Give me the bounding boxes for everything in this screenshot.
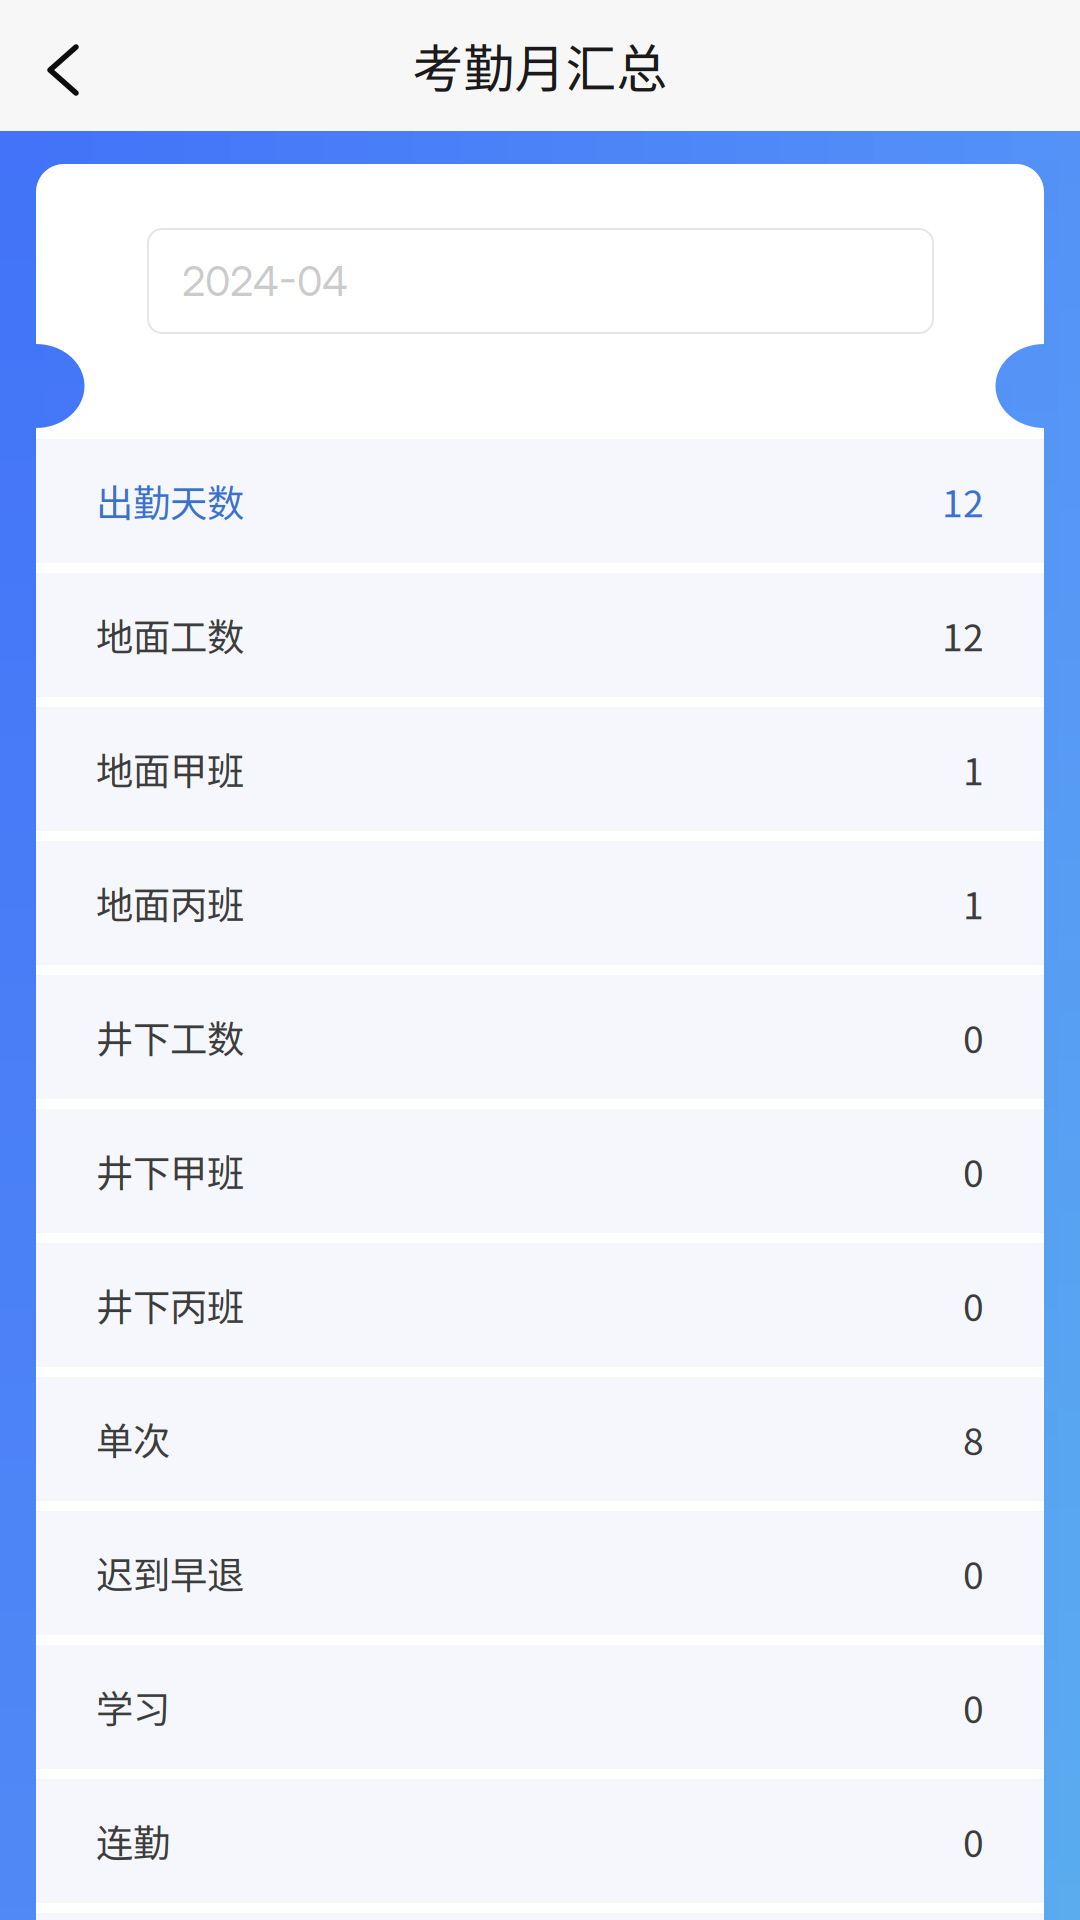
- staticText: 学习: [96, 1680, 170, 1734]
- staticText: 0: [963, 1144, 984, 1198]
- staticText: 地面甲班: [96, 742, 244, 796]
- button[interactable]: 地面甲班: [36, 707, 1044, 831]
- button[interactable]: 2024-04: [148, 229, 933, 333]
- staticText: 迟到早退: [96, 1546, 244, 1600]
- button[interactable]: 连勤: [36, 1779, 1044, 1903]
- staticText: 0: [963, 1814, 984, 1868]
- button[interactable]: 单次: [36, 1377, 1044, 1501]
- button[interactable]: 学习: [36, 1645, 1044, 1769]
- staticText: 井下丙班: [96, 1278, 244, 1332]
- staticText: 连勤: [96, 1814, 170, 1868]
- staticText: 1: [963, 742, 984, 796]
- staticText: 0: [963, 1680, 984, 1734]
- staticText: 2024-04: [182, 256, 348, 306]
- staticText: 考勤月汇总: [412, 29, 667, 102]
- button[interactable]: 迟到早退: [36, 1511, 1044, 1635]
- staticText: 地面工数: [96, 608, 244, 662]
- staticText: 0: [963, 1278, 984, 1332]
- button[interactable]: Back: [0, 0, 120, 131]
- staticText: 12: [942, 608, 984, 662]
- staticText: 井下甲班: [96, 1144, 244, 1198]
- button[interactable]: 出勤天数: [36, 439, 1044, 563]
- staticText: 出勤天数: [96, 474, 244, 528]
- staticText: 单次: [96, 1412, 170, 1466]
- staticText: 0: [963, 1010, 984, 1064]
- staticText: 1: [963, 876, 984, 930]
- button[interactable]: 地面丙班: [36, 841, 1044, 965]
- staticText: 0: [963, 1546, 984, 1600]
- staticText: 井下工数: [96, 1010, 244, 1064]
- button[interactable]: 井下甲班: [36, 1109, 1044, 1233]
- button[interactable]: 地面工数: [36, 573, 1044, 697]
- button[interactable]: 井下丙班: [36, 1243, 1044, 1367]
- staticText: 地面丙班: [96, 876, 244, 930]
- button[interactable]: 井下工数: [36, 975, 1044, 1099]
- staticText: 8: [963, 1412, 984, 1466]
- staticText: 12: [942, 474, 984, 528]
